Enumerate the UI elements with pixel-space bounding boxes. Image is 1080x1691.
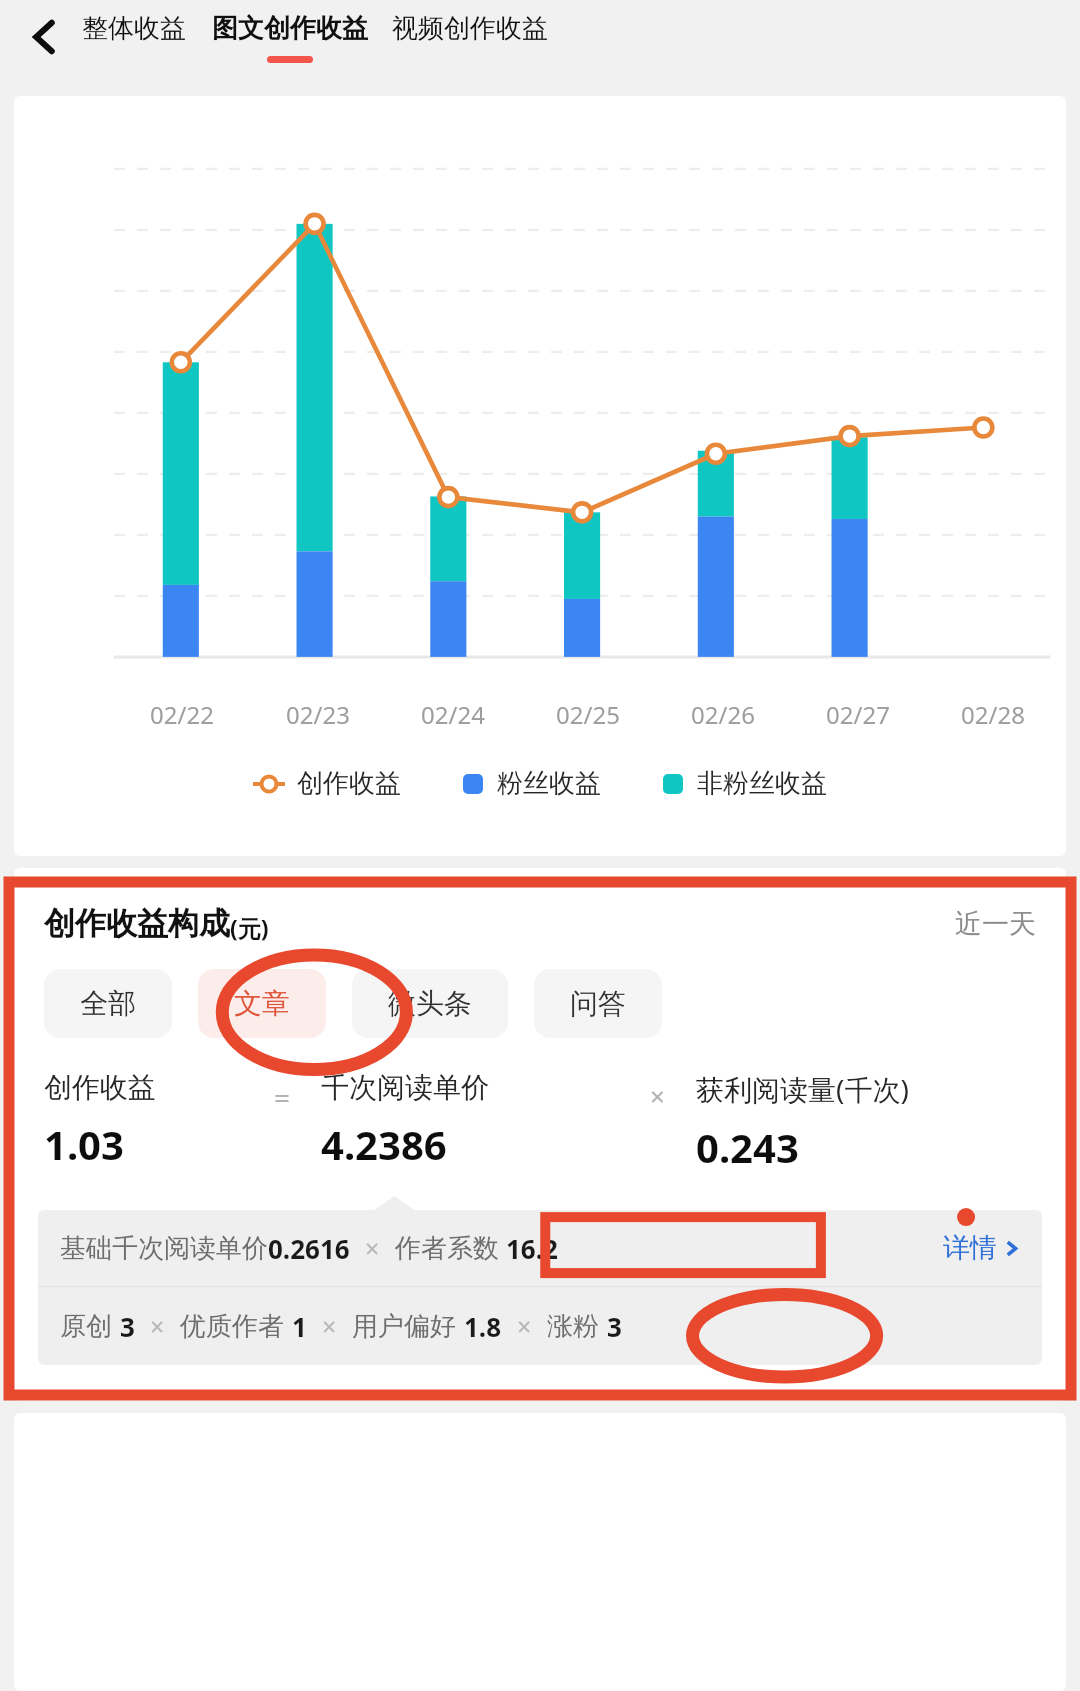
staticText: 创作收益构成 <box>44 904 230 943</box>
staticText: 获利阅读量(千次) <box>696 1070 909 1108</box>
staticText: 02/24 <box>421 698 485 731</box>
button[interactable]: 全部 <box>44 969 172 1038</box>
button[interactable]: 近一天 <box>955 907 1036 941</box>
staticText: 02/22 <box>150 698 214 731</box>
button[interactable]: 微头条 <box>352 969 508 1038</box>
staticText: 详情 <box>943 1231 997 1265</box>
staticText: 千次阅读单价 <box>321 1070 489 1105</box>
staticText: 02/26 <box>691 698 755 731</box>
staticText: 问答 <box>570 986 626 1021</box>
button[interactable]: Back <box>16 8 74 66</box>
staticText: = <box>274 1078 291 1116</box>
staticText: 整体收益 <box>82 12 186 45</box>
button[interactable]: 图文创作收益 <box>212 0 368 63</box>
staticText: 原创 <box>60 1310 112 1343</box>
staticText: 0.243 <box>696 1120 799 1174</box>
staticText: 02/25 <box>556 698 620 731</box>
staticText: 图文创作收益 <box>212 12 368 45</box>
button[interactable]: 详情 <box>943 1231 1020 1265</box>
staticText: 视频创作收益 <box>392 12 548 45</box>
staticText: 基础千次阅读单价 <box>60 1232 268 1265</box>
staticText: × <box>517 1309 532 1343</box>
staticText: × <box>150 1309 165 1343</box>
staticText: × <box>650 1078 665 1113</box>
staticText: 作者系数 <box>395 1232 499 1265</box>
staticText: × <box>365 1231 380 1265</box>
staticText: 1 <box>292 1309 307 1344</box>
staticText: 0.2616 <box>268 1231 350 1266</box>
staticText: 近一天 <box>955 907 1036 941</box>
staticText: 02/27 <box>826 698 890 731</box>
staticText: 3 <box>120 1309 135 1344</box>
staticText: 粉丝收益 <box>497 767 601 800</box>
staticText: 16.2 <box>506 1231 558 1266</box>
button[interactable]: 视频创作收益 <box>392 0 548 56</box>
staticText: 全部 <box>80 986 136 1021</box>
staticText: × <box>322 1309 337 1343</box>
staticText: 02/28 <box>961 698 1025 731</box>
staticText: 微头条 <box>388 986 472 1021</box>
button[interactable]: 粉丝收益 <box>463 767 601 800</box>
staticText: 1.03 <box>44 1117 124 1171</box>
button[interactable]: 问答 <box>534 969 662 1038</box>
staticText: 4.2386 <box>321 1117 447 1171</box>
staticText: 用户偏好 <box>352 1310 456 1343</box>
button[interactable]: 整体收益 <box>82 0 186 56</box>
staticText: (元) <box>230 912 269 943</box>
button[interactable]: 创作收益 <box>253 767 401 800</box>
staticText: 非粉丝收益 <box>697 767 827 800</box>
staticText: 创作收益 <box>44 1070 156 1105</box>
staticText: 3 <box>607 1309 622 1344</box>
staticText: 1.8 <box>464 1309 502 1344</box>
button[interactable]: 非粉丝收益 <box>663 767 827 800</box>
staticText: 文章 <box>234 986 290 1021</box>
staticText: 02/23 <box>286 698 350 731</box>
button[interactable]: 文章 <box>198 969 326 1038</box>
staticText: 创作收益 <box>297 767 401 800</box>
staticText: 涨粉 <box>547 1310 599 1343</box>
staticText: 优质作者 <box>180 1310 284 1343</box>
